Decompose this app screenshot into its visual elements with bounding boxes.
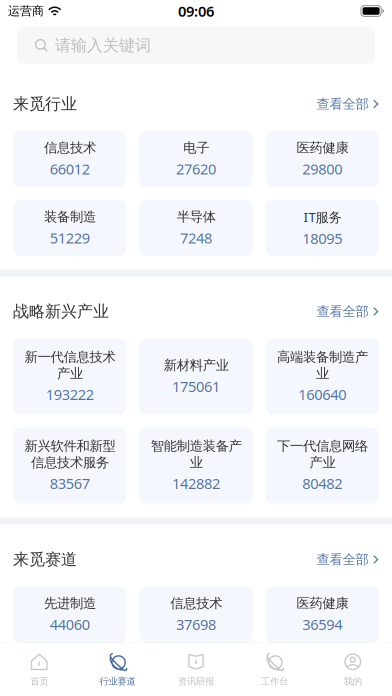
button[interactable]: 装备制造 [13, 200, 126, 256]
staticText: 37698 [176, 614, 216, 634]
staticText: 资讯研报 [178, 676, 214, 687]
staticText: 信息技术 [170, 595, 222, 611]
staticText: 工作台 [261, 676, 288, 687]
staticText: 查看全部 [317, 551, 369, 568]
staticText: 查看全部 [317, 96, 369, 112]
button[interactable]: 信息技术 [13, 131, 126, 187]
button[interactable]: 工作台 [235, 643, 314, 696]
button[interactable]: 电子 [139, 131, 253, 187]
button[interactable]: 首页 [0, 643, 78, 696]
button[interactable]: 新材料产业 [139, 338, 253, 414]
button[interactable]: 医药健康 [266, 586, 379, 642]
staticText: 查看全部 [317, 303, 369, 320]
button[interactable]: 下一代信息网络产业 [266, 427, 379, 503]
button[interactable]: 查看全部 [317, 303, 379, 320]
staticText: 18095 [302, 229, 342, 248]
staticText: 66012 [50, 159, 90, 178]
button[interactable]: 新兴软件和新型信息技术服务 [13, 427, 126, 503]
staticText: 来觅行业 [13, 94, 77, 114]
button[interactable]: 智能制造装备产业 [139, 427, 253, 503]
button[interactable]: 新一代信息技术产业 [13, 338, 126, 414]
staticText: 83567 [50, 474, 90, 493]
button[interactable]: 资讯研报 [157, 643, 235, 696]
staticText: 电子 [183, 140, 209, 156]
button[interactable]: 查看全部 [317, 96, 379, 112]
staticText: 医药健康 [296, 140, 348, 156]
staticText: 51229 [50, 228, 90, 247]
staticText: 193222 [46, 385, 94, 404]
staticText: 医药健康 [296, 595, 348, 611]
staticText: 高端装备制造产业 [277, 349, 368, 382]
staticText: 80482 [302, 474, 342, 493]
button[interactable]: 请输入关键词 [17, 27, 375, 64]
staticText: 下一代信息网络产业 [277, 438, 368, 471]
staticText: 先进制造 [44, 595, 96, 611]
button[interactable]: 信息技术 [139, 586, 253, 642]
staticText: 信息技术 [44, 140, 96, 156]
staticText: 09:06 [178, 1, 214, 21]
staticText: 装备制造 [44, 209, 96, 225]
button[interactable]: 医药健康 [266, 131, 379, 187]
staticText: 我的 [344, 676, 362, 687]
staticText: 请输入关键词 [55, 36, 151, 55]
button[interactable]: 高端装备制造产业 [266, 338, 379, 414]
staticText: 智能制造装备产业 [150, 438, 241, 471]
staticText: 运营商 [8, 4, 44, 18]
staticText: 新兴软件和新型信息技术服务 [24, 438, 115, 471]
staticText: 首页 [30, 676, 48, 687]
button[interactable]: 我的 [314, 643, 392, 696]
staticText: 新材料产业 [163, 357, 228, 373]
staticText: IT服务 [303, 208, 341, 226]
button[interactable]: 半导体 [139, 200, 253, 256]
staticText: 来觅赛道 [13, 550, 77, 569]
staticText: 160640 [298, 385, 346, 404]
staticText: 战略新兴产业 [13, 302, 109, 321]
staticText: 29800 [302, 159, 342, 178]
button[interactable]: 行业赛道 [78, 643, 157, 696]
staticText: 142882 [172, 474, 220, 493]
staticText: 27620 [176, 159, 216, 178]
staticText: 半导体 [176, 209, 215, 225]
staticText: 7248 [180, 228, 212, 247]
staticText: 36594 [302, 614, 342, 634]
button[interactable]: 先进制造 [13, 586, 126, 642]
staticText: 175061 [172, 376, 220, 396]
staticText: 新一代信息技术产业 [24, 349, 115, 382]
staticText: 行业赛道 [100, 676, 136, 687]
staticText: 44060 [50, 614, 90, 634]
button[interactable]: 查看全部 [317, 551, 379, 568]
button[interactable]: IT服务 [266, 200, 379, 256]
